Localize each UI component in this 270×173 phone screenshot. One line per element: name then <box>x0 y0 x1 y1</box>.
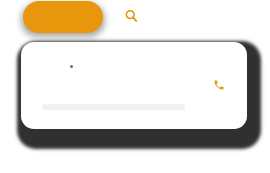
button[interactable] <box>21 42 247 129</box>
button[interactable]: Search <box>116 0 150 31</box>
button[interactable] <box>23 1 103 33</box>
button[interactable]: Call <box>213 79 225 91</box>
